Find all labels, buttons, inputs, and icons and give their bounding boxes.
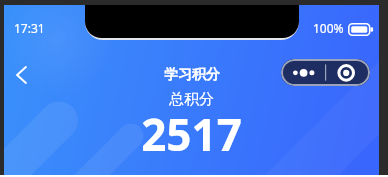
staticText: 总积分 (169, 90, 214, 109)
staticText: 17:31 (14, 20, 45, 36)
staticText: 学习积分 (164, 66, 220, 84)
staticText: 100% (313, 20, 344, 36)
button[interactable]: More options (281, 59, 370, 86)
button[interactable]: Back (4, 57, 41, 93)
staticText: 2517 (141, 104, 242, 164)
